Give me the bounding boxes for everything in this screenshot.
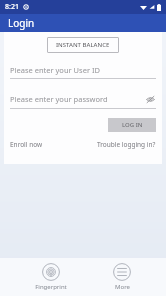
- staticText: More: [115, 283, 130, 291]
- button[interactable]: Show password: [144, 93, 156, 105]
- staticText: Enroll now: [10, 140, 43, 149]
- staticText: Please enter your User ID: [10, 65, 156, 75]
- staticText: Fingerprint: [35, 283, 67, 291]
- button[interactable]: LOG IN: [108, 118, 156, 132]
- staticText: Please enter your password: [10, 94, 144, 104]
- button[interactable]: Enroll now: [10, 140, 43, 149]
- button[interactable]: Fingerprint: [25, 260, 77, 294]
- staticText: 8:21: [5, 2, 19, 12]
- staticText: Trouble logging in?: [97, 140, 156, 149]
- staticText: INSTANT BALANCE: [56, 41, 110, 49]
- other: Fingerprint: [42, 263, 60, 281]
- button[interactable]: Please enter your User ID: [10, 65, 156, 75]
- button[interactable]: Please enter your password: [10, 93, 156, 105]
- staticText: LOG IN: [122, 121, 143, 129]
- button[interactable]: More: [103, 260, 141, 294]
- other: More: [113, 263, 131, 281]
- button[interactable]: Trouble logging in?: [97, 140, 156, 149]
- button[interactable]: INSTANT BALANCE: [47, 37, 119, 53]
- staticText: Login: [8, 16, 35, 30]
